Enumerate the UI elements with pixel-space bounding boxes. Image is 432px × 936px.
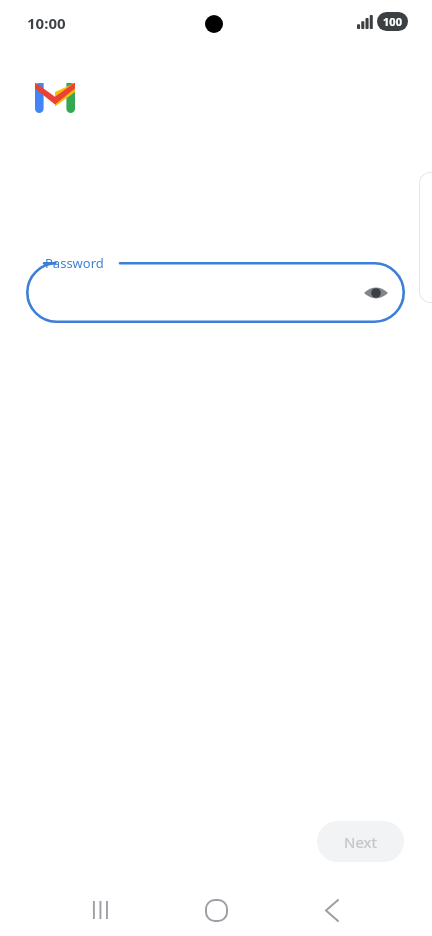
other: Gmail [35, 83, 75, 113]
button[interactable] [26, 262, 405, 323]
button[interactable]: Show password [360, 277, 392, 309]
button[interactable]: Recent apps [76, 886, 124, 934]
staticText: Next [344, 832, 377, 852]
button[interactable]: Back [308, 886, 356, 934]
button[interactable]: Next [317, 821, 404, 862]
staticText: 100 [383, 14, 402, 29]
staticText: 10:00 [27, 13, 66, 33]
button[interactable]: Home [192, 886, 240, 934]
staticText: Password [45, 254, 104, 272]
